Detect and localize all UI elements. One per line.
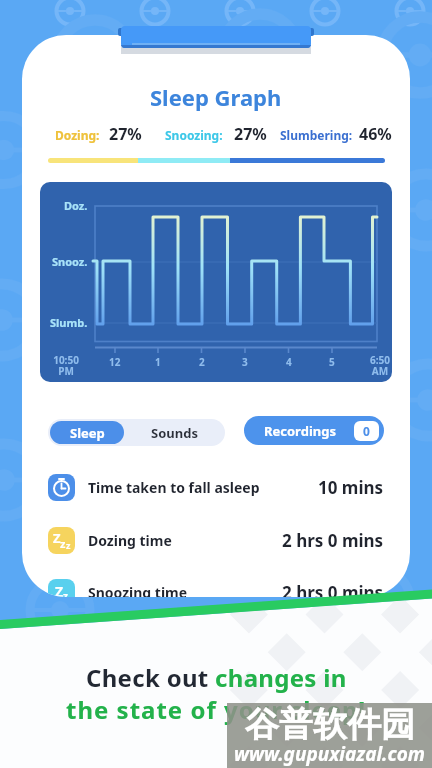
staticText: 10:50 PM	[53, 353, 79, 378]
staticText: 3	[242, 355, 248, 369]
staticText: 2	[199, 355, 205, 369]
staticText: Snoozing:	[165, 127, 223, 143]
staticText: Recordings	[264, 422, 336, 440]
staticText: 10 mins	[318, 476, 384, 499]
staticText: Time taken to fall asleep	[88, 478, 260, 497]
staticText: Z	[53, 529, 61, 547]
button[interactable]: Time taken to fall asleep	[22, 474, 410, 501]
staticText: Doz.	[64, 198, 88, 213]
staticText: 4	[286, 355, 292, 369]
staticText: the state of your sleep!	[66, 693, 366, 726]
staticText: 27%	[109, 123, 142, 145]
staticText: 0	[363, 423, 370, 439]
button[interactable]: Z	[22, 527, 410, 554]
button[interactable]: Recordings	[244, 416, 384, 445]
staticText: 12	[109, 355, 121, 369]
staticText: Sleep Graph	[150, 82, 282, 112]
staticText: Check out changes in	[86, 661, 347, 694]
staticText: 6:50 AM	[370, 353, 390, 378]
staticText: Slumb.	[50, 315, 88, 330]
staticText: Snoozing time	[88, 583, 188, 597]
staticText: Z	[55, 582, 64, 597]
staticText: 27%	[234, 123, 267, 145]
staticText: z	[66, 539, 71, 551]
staticText: z	[60, 536, 66, 551]
staticText: Slumbering:	[280, 127, 353, 143]
staticText: 2 hrs 0 mins	[282, 529, 384, 552]
staticText: 谷普软件园	[245, 703, 415, 746]
staticText: z	[63, 589, 68, 597]
staticText: Snooz.	[52, 254, 88, 269]
button[interactable]: Sleep	[50, 421, 124, 444]
staticText: www.gupuxiazal.com	[234, 741, 426, 767]
staticText: Sleep	[70, 424, 105, 442]
button[interactable]: Sounds	[124, 419, 225, 446]
staticText: 5	[329, 355, 335, 369]
staticText: Sounds	[151, 424, 198, 442]
staticText: 2 hrs 0 mins	[282, 581, 384, 597]
staticText: 46%	[359, 123, 392, 145]
staticText: Dozing:	[55, 127, 100, 143]
button[interactable]: Z	[22, 579, 410, 597]
staticText: 1	[155, 355, 161, 369]
staticText: Dozing time	[88, 531, 172, 550]
